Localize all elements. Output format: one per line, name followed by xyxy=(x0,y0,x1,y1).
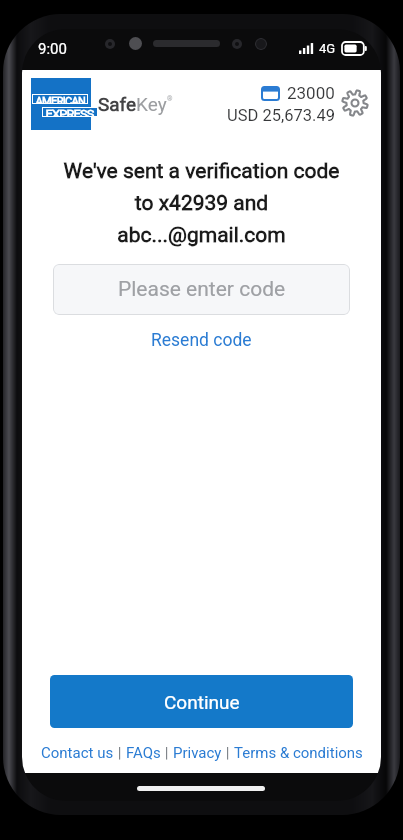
staticText: Please enter code xyxy=(118,277,286,302)
button[interactable]: Settings xyxy=(340,88,369,117)
staticText: ® xyxy=(167,95,173,103)
button[interactable]: FAQs xyxy=(126,741,161,765)
staticText: We've sent a verification code to x42939… xyxy=(34,159,369,247)
button[interactable]: Continue xyxy=(50,675,353,728)
staticText: 9:00 xyxy=(38,40,67,58)
staticText: Continue xyxy=(164,691,240,713)
button[interactable]: American Express xyxy=(31,78,91,130)
staticText: 23000 xyxy=(287,83,335,103)
button[interactable]: Terms & conditions xyxy=(234,741,363,765)
staticText: | xyxy=(222,744,234,762)
button[interactable]: Resend code xyxy=(145,328,258,353)
button[interactable]: Privacy xyxy=(173,741,222,765)
staticText: | xyxy=(161,744,173,762)
staticText: USD 25,673.49 xyxy=(227,106,335,125)
staticText: 4G xyxy=(319,41,336,56)
staticText: SafeKey xyxy=(98,93,167,115)
staticText: EXPRESS xyxy=(46,108,94,116)
staticText: | xyxy=(114,744,126,762)
button[interactable]: Please enter code xyxy=(53,264,350,315)
staticText: AMERICAN xyxy=(36,95,85,103)
button[interactable]: Contact us xyxy=(41,741,114,765)
